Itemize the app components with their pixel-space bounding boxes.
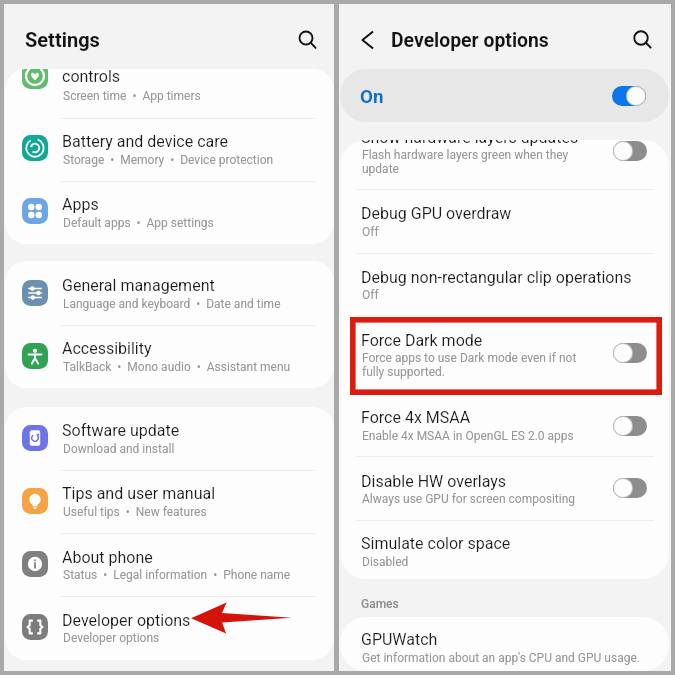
button[interactable]: Search: [289, 21, 323, 55]
staticText: General management: [62, 276, 215, 295]
staticText: Software update: [62, 421, 180, 440]
button[interactable]: [340, 140, 669, 189]
staticText: Storage • Memory • Device protection: [63, 153, 274, 167]
staticText: Default apps • App settings: [63, 216, 214, 230]
staticText: Developer options: [391, 29, 549, 52]
staticText: Settings: [25, 28, 100, 51]
button[interactable]: [5, 181, 334, 244]
staticText: Debug non-rectangular clip operations: [361, 268, 651, 287]
button[interactable]: [5, 69, 334, 118]
staticText: Simulate color space: [361, 534, 651, 553]
staticText: Flash hardware layers green when they up…: [362, 148, 610, 176]
button[interactable]: GPUWatch: [340, 617, 669, 671]
button[interactable]: [340, 520, 669, 579]
staticText: controls: [62, 69, 121, 86]
button[interactable]: [5, 118, 334, 181]
button[interactable]: [340, 253, 669, 315]
button[interactable]: [340, 315, 669, 391]
button[interactable]: Switch off: [613, 478, 647, 498]
staticText: Force Dark mode: [361, 331, 651, 350]
staticText: Always use GPU for screen compositing: [362, 492, 610, 506]
staticText: TalkBack • Mono audio • Assistant menu: [63, 360, 291, 374]
staticText: Language and keyboard • Date and time: [63, 297, 281, 311]
staticText: About phone: [62, 548, 153, 567]
button[interactable]: [5, 407, 334, 470]
staticText: Tips and user manual: [62, 484, 216, 503]
staticText: Developer options: [62, 611, 191, 630]
staticText: Download and install: [63, 442, 175, 456]
staticText: Show hardware layers updates: [361, 140, 651, 147]
button[interactable]: Back: [351, 23, 385, 57]
staticText: Force apps to use Dark mode even if not …: [362, 351, 610, 379]
button[interactable]: [340, 456, 669, 520]
staticText: Off: [362, 288, 610, 302]
button[interactable]: On: [340, 69, 669, 122]
staticText: Disabled: [362, 555, 610, 569]
button[interactable]: [5, 470, 334, 533]
button[interactable]: [340, 189, 669, 253]
button[interactable]: [5, 262, 334, 325]
staticText: Battery and device care: [62, 132, 228, 151]
staticText: Useful tips • New features: [63, 505, 207, 519]
staticText: Disable HW overlays: [361, 472, 651, 491]
staticText: Accessibility: [62, 339, 152, 358]
staticText: GPUWatch: [361, 630, 438, 649]
staticText: On: [360, 86, 384, 108]
staticText: Debug GPU overdraw: [361, 204, 651, 223]
staticText: Apps: [62, 195, 99, 214]
button[interactable]: Switch off: [613, 141, 647, 161]
button[interactable]: Switch on: [612, 86, 646, 106]
staticText: Screen time • App timers: [63, 89, 201, 103]
button[interactable]: [340, 391, 669, 456]
button[interactable]: Switch off: [613, 343, 647, 363]
staticText: Developer options: [63, 631, 160, 645]
staticText: Force 4x MSAA: [361, 408, 651, 427]
staticText: Off: [362, 225, 610, 239]
staticText: Get information about an app's CPU and G…: [362, 651, 640, 665]
button[interactable]: Search: [624, 21, 658, 55]
staticText: Enable 4x MSAA in OpenGL ES 2.0 apps: [362, 429, 610, 443]
button[interactable]: [5, 533, 334, 596]
button[interactable]: Switch off: [613, 416, 647, 436]
staticText: Status • Legal information • Phone name: [63, 568, 291, 582]
staticText: Games: [361, 597, 399, 611]
button[interactable]: [5, 325, 334, 388]
button[interactable]: [5, 596, 334, 659]
